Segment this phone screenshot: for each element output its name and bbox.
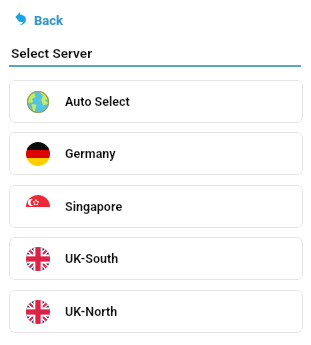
staticText: Singapore bbox=[65, 199, 123, 214]
staticText: Back bbox=[34, 13, 63, 28]
staticText: UK-South bbox=[65, 251, 119, 266]
staticText: Germany bbox=[65, 146, 116, 161]
staticText: Select Server bbox=[11, 45, 93, 61]
button[interactable]: Auto Select bbox=[9, 80, 303, 123]
button[interactable]: Germany bbox=[9, 132, 303, 175]
staticText: UK-North bbox=[65, 304, 118, 319]
button[interactable]: Singapore bbox=[9, 185, 303, 228]
other: Back bbox=[14, 12, 27, 25]
button[interactable]: Back bbox=[14, 11, 63, 26]
button[interactable]: UK-North bbox=[9, 290, 303, 333]
staticText: Auto Select bbox=[65, 94, 130, 109]
button[interactable]: UK-South bbox=[9, 237, 303, 280]
